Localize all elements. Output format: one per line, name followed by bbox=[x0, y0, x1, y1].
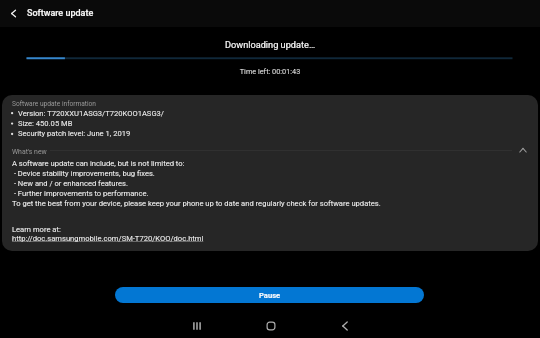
staticText: Version: T720XXU1ASG3/T720KOO1ASG3/ Size… bbox=[18, 109, 164, 138]
button[interactable]: Pause bbox=[115, 287, 424, 303]
staticText: What's new bbox=[12, 148, 47, 156]
button[interactable]: Recent apps bbox=[167, 313, 227, 338]
button[interactable]: http://doc.samsungmobile.com/SM-T720/KOO… bbox=[12, 234, 204, 243]
staticText: Learn more at: bbox=[12, 225, 61, 234]
staticText: Pause bbox=[259, 291, 281, 300]
button[interactable]: What's new, collapse bbox=[12, 148, 530, 159]
staticText: Downloading update… bbox=[0, 39, 540, 50]
button[interactable]: Home bbox=[241, 313, 301, 338]
staticText: Software update bbox=[27, 8, 94, 19]
staticText: Software update information bbox=[12, 100, 96, 108]
button[interactable]: Navigate up bbox=[0, 0, 27, 27]
staticText: A software update can include, but is no… bbox=[12, 159, 381, 208]
button[interactable]: Back bbox=[315, 313, 375, 338]
staticText: Time left: 00:01:43 bbox=[0, 67, 540, 76]
